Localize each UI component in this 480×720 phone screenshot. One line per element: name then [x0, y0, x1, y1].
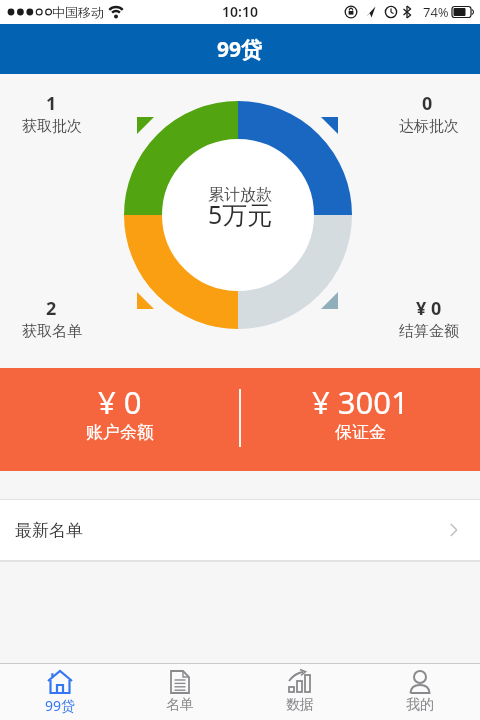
staticText: 5万元 — [208, 197, 273, 231]
button[interactable]: 数据 — [240, 664, 360, 720]
button[interactable] — [0, 368, 240, 471]
staticText: 10:10 — [222, 2, 258, 21]
button[interactable]: 我的 — [360, 664, 480, 720]
staticText: 2 — [46, 296, 57, 321]
staticText: 累计放款 — [208, 185, 272, 205]
staticText: 0 — [422, 91, 433, 116]
staticText: 保证金 — [335, 422, 386, 443]
button[interactable] — [240, 368, 480, 471]
staticText: 74% — [423, 3, 449, 21]
staticText: ¥ 0 — [416, 296, 442, 321]
staticText: 结算金额 — [399, 322, 459, 341]
staticText: ¥ 0 — [98, 381, 142, 421]
button[interactable]: 99贷 — [0, 664, 120, 720]
staticText: 获取名单 — [22, 322, 82, 341]
staticText: 数据 — [286, 696, 314, 714]
staticText: 99贷 — [217, 35, 263, 64]
button[interactable]: 名单 — [120, 664, 240, 720]
staticText: ¥ 3001 — [312, 381, 409, 421]
button[interactable]: 最新名单 — [0, 500, 480, 560]
staticText: 99贷 — [45, 696, 76, 715]
staticText: 名单 — [166, 696, 194, 714]
staticText: 1 — [46, 91, 57, 116]
staticText: 我的 — [406, 696, 434, 714]
staticText: 达标批次 — [399, 117, 459, 136]
staticText: 账户余额 — [86, 422, 154, 443]
staticText: 最新名单 — [15, 520, 83, 541]
staticText: 中国移动 — [52, 4, 104, 20]
staticText: 获取批次 — [22, 117, 82, 136]
